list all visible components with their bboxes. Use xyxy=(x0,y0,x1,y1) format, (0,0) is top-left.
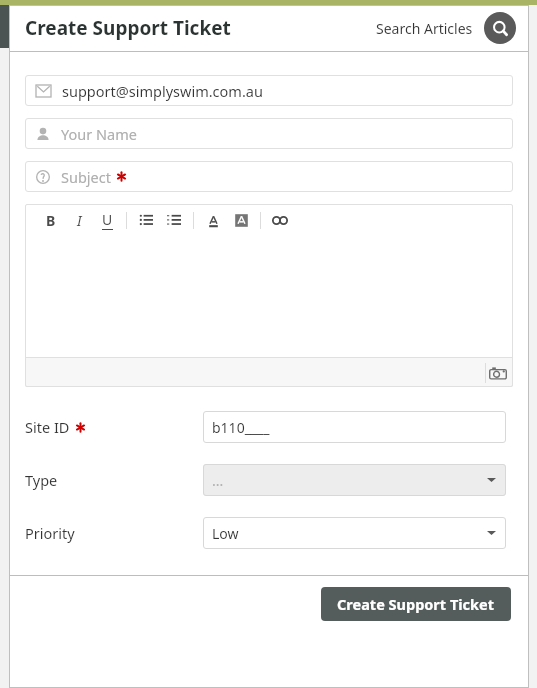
button[interactable]: Attach image xyxy=(488,363,508,383)
staticText: I xyxy=(77,211,82,230)
staticText: Search Articles xyxy=(376,19,473,38)
button[interactable] xyxy=(266,207,294,233)
staticText: Create Support Ticket xyxy=(337,594,495,614)
button[interactable]: ... xyxy=(203,464,506,496)
button[interactable] xyxy=(132,207,160,233)
button[interactable] xyxy=(227,207,255,233)
staticText: Subject xyxy=(61,167,111,187)
button[interactable]: Low xyxy=(203,517,506,549)
staticText: support@simplyswim.com.au xyxy=(62,81,263,101)
staticText: Your Name xyxy=(61,124,137,144)
staticText: Site ID xyxy=(25,417,70,437)
other: Search xyxy=(484,12,516,44)
staticText: ... xyxy=(212,471,224,490)
button[interactable]: Subject xyxy=(25,161,513,192)
button[interactable]: support@simplyswim.com.au xyxy=(25,75,513,106)
staticText: Low xyxy=(212,524,239,543)
button[interactable]: Search Articles xyxy=(376,12,516,44)
button[interactable] xyxy=(160,207,188,233)
button[interactable]: Your Name xyxy=(25,118,513,149)
staticText: Create Support Ticket xyxy=(25,15,231,41)
staticText: B xyxy=(46,211,56,230)
button[interactable]: U xyxy=(93,207,121,233)
button[interactable]: Create Support Ticket xyxy=(321,587,511,621)
button[interactable]: b110____ xyxy=(203,411,506,443)
staticText: b110____ xyxy=(212,418,270,437)
staticText: Priority xyxy=(25,523,75,543)
button[interactable]: B xyxy=(37,207,65,233)
button[interactable] xyxy=(199,207,227,233)
staticText: Type xyxy=(25,470,58,490)
staticText: U xyxy=(102,210,113,229)
button[interactable]: I xyxy=(65,207,93,233)
